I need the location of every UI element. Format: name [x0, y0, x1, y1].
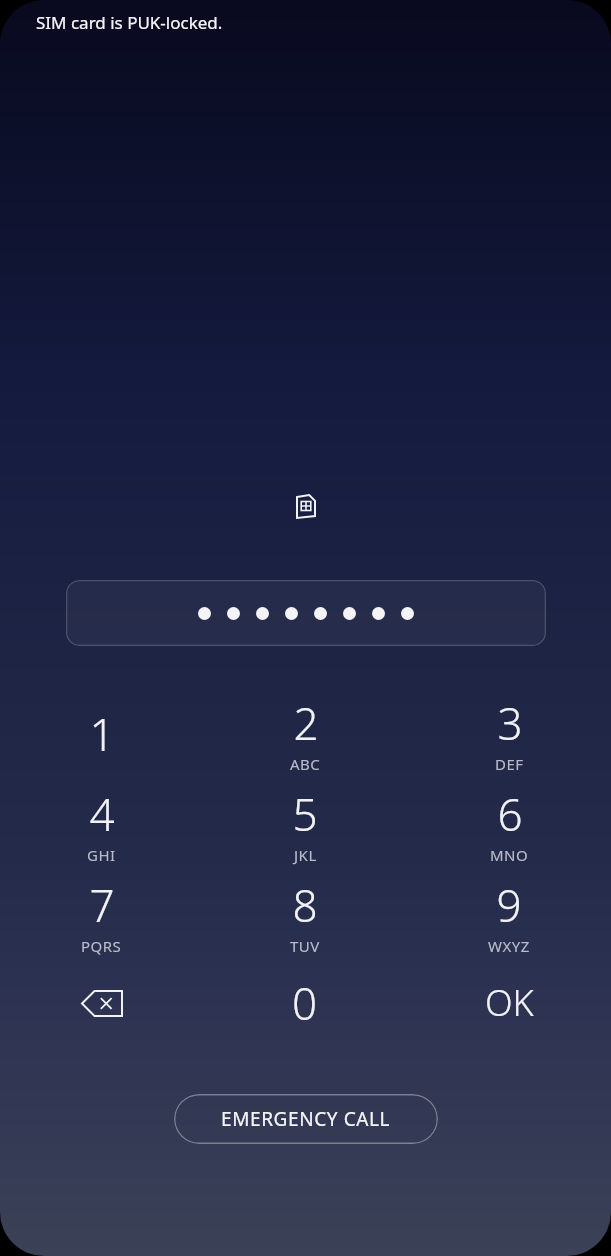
button[interactable] — [66, 580, 546, 646]
staticText: DEF — [495, 754, 524, 774]
staticText: 4 — [89, 784, 115, 844]
staticText: PQRS — [81, 936, 122, 956]
button[interactable]: 4 — [0, 781, 203, 872]
staticText: WXYZ — [488, 936, 530, 956]
staticText: 9 — [496, 875, 522, 935]
button[interactable]: 7 — [0, 872, 203, 963]
staticText: 8 — [292, 875, 318, 935]
staticText: 3 — [497, 693, 523, 753]
staticText: EMERGENCY CALL — [221, 1106, 391, 1132]
button[interactable]: OK — [407, 963, 611, 1054]
staticText: 7 — [89, 875, 115, 935]
staticText: 1 — [89, 704, 115, 764]
button[interactable]: EMERGENCY CALL — [174, 1094, 438, 1144]
staticText: 5 — [292, 784, 318, 844]
button[interactable]: 6 — [407, 781, 611, 872]
button[interactable]: 5 — [203, 781, 407, 872]
staticText: ABC — [290, 754, 321, 774]
button[interactable]: Backspace — [0, 963, 203, 1054]
staticText: 2 — [293, 693, 319, 753]
button[interactable]: 3 — [407, 690, 611, 781]
staticText: GHI — [87, 845, 116, 865]
button[interactable]: 0 — [203, 963, 407, 1054]
staticText: SIM card is PUK-locked. — [36, 11, 223, 34]
staticText: OK — [485, 978, 534, 1027]
staticText: 0 — [292, 973, 318, 1033]
button[interactable]: 1 — [0, 690, 203, 781]
button[interactable]: 8 — [203, 872, 407, 963]
button[interactable]: 2 — [203, 690, 407, 781]
staticText: TUV — [290, 936, 320, 956]
button[interactable]: 9 — [407, 872, 611, 963]
staticText: 6 — [497, 784, 523, 844]
staticText: JKL — [294, 845, 317, 865]
staticText: MNO — [490, 845, 529, 865]
